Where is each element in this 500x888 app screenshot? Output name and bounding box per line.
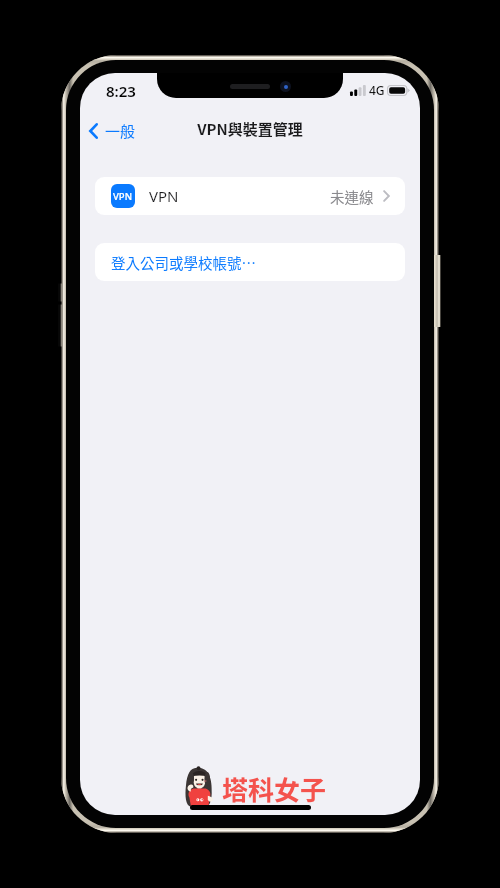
staticText: VPN與裝置管理 (80, 118, 420, 140)
other: Battery (387, 85, 410, 96)
staticText: 塔科女子 (222, 770, 327, 808)
staticText: 未連線 (330, 186, 374, 207)
staticText: 8:23 (106, 81, 136, 101)
staticText: 登入公司或學校帳號… (111, 252, 256, 273)
staticText: 一般 (105, 120, 136, 142)
staticText: VPN (149, 186, 179, 206)
button[interactable]: VPN (95, 177, 405, 215)
button[interactable]: 登入公司或學校帳號… (95, 243, 405, 281)
staticText: 4G (369, 82, 385, 98)
other: Cellular signal (350, 85, 366, 96)
staticText: VPN (113, 190, 133, 203)
other: Site watermark (184, 767, 212, 808)
button[interactable]: 一般 (82, 112, 143, 150)
